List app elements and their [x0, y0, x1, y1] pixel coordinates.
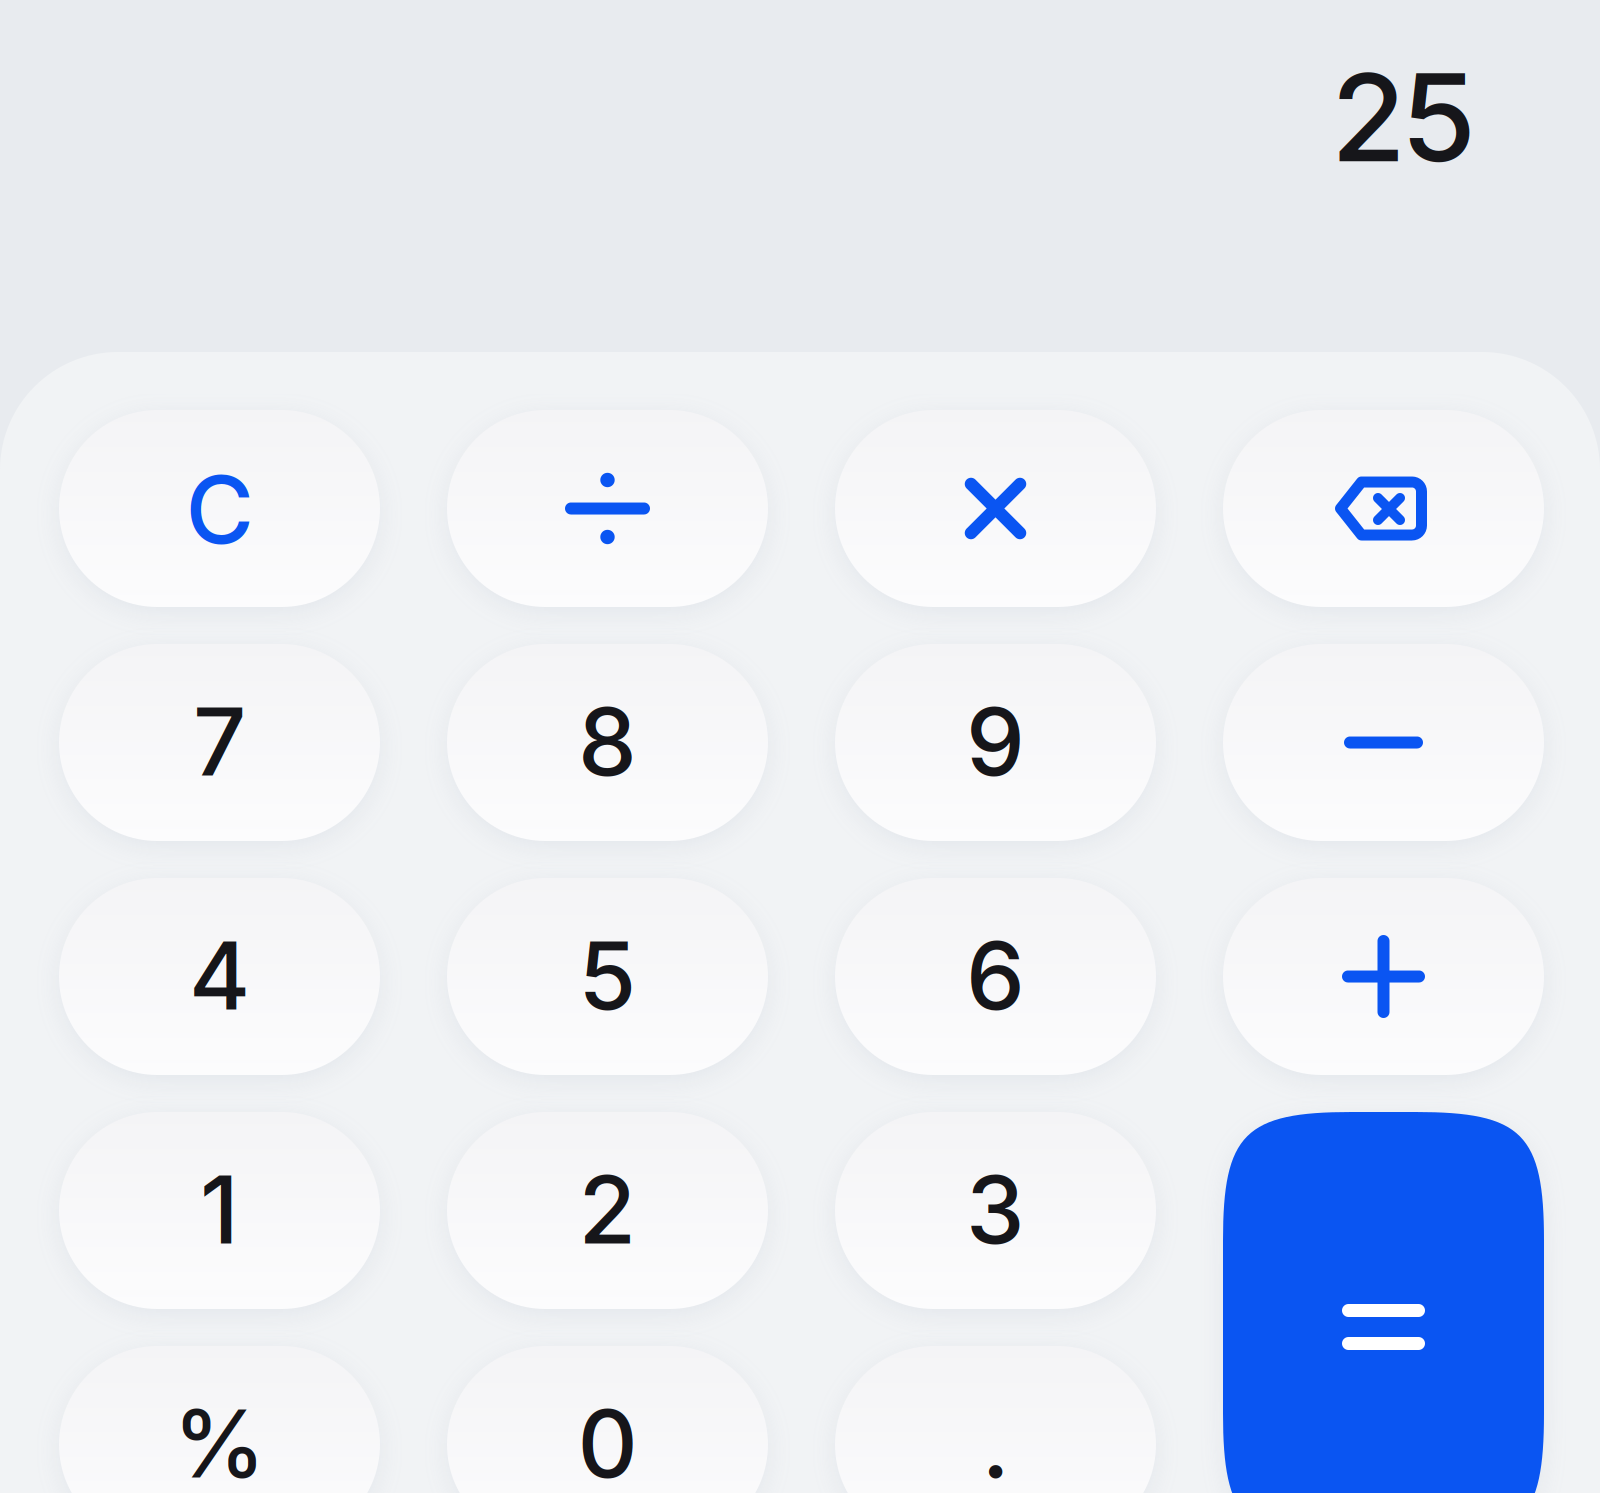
button[interactable]: 5 [447, 878, 768, 1075]
button[interactable]: % [59, 1346, 380, 1493]
button[interactable]: 4 [59, 878, 380, 1075]
staticText: 7 [193, 685, 246, 798]
button[interactable]: Plus [1223, 878, 1544, 1075]
button[interactable]: Divide [447, 410, 768, 607]
staticText: 5 [578, 919, 636, 1032]
staticText: 1 [200, 1153, 239, 1266]
button[interactable]: Multiply [835, 410, 1156, 607]
button[interactable]: . [835, 1346, 1156, 1493]
staticText: % [173, 1387, 266, 1493]
button[interactable]: 3 [835, 1112, 1156, 1309]
button[interactable]: 2 [447, 1112, 768, 1309]
staticText: 6 [966, 919, 1025, 1032]
staticText: 0 [577, 1387, 637, 1493]
staticText: 4 [189, 919, 250, 1032]
staticText: 3 [966, 1153, 1025, 1266]
button[interactable]: 0 [447, 1346, 768, 1493]
staticText: 8 [578, 685, 637, 798]
button[interactable]: 8 [447, 644, 768, 841]
button[interactable]: 6 [835, 878, 1156, 1075]
staticText: C [185, 453, 253, 566]
staticText: 25 [1331, 44, 1476, 190]
button[interactable]: 9 [835, 644, 1156, 841]
button[interactable]: 1 [59, 1112, 380, 1309]
button[interactable]: Minus [1223, 644, 1544, 841]
button[interactable]: Equals [1223, 1112, 1544, 1493]
staticText: 2 [578, 1153, 636, 1266]
staticText: . [981, 1387, 1009, 1493]
staticText: 9 [966, 685, 1025, 798]
button[interactable]: Delete [1223, 410, 1544, 607]
button[interactable]: 7 [59, 644, 380, 841]
button[interactable]: C [59, 410, 380, 607]
